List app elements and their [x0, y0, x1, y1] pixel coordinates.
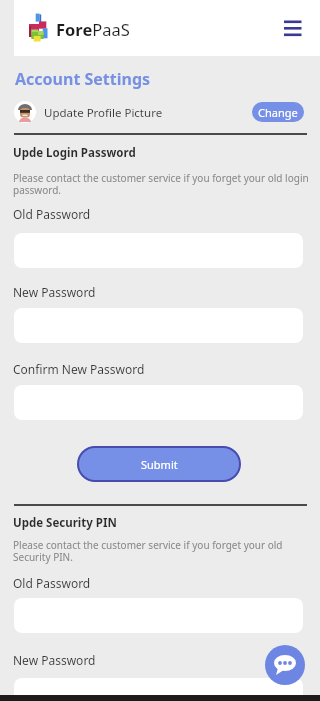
staticText: ForePaaS	[56, 18, 130, 40]
staticText: Please contact the customer service if y…	[13, 538, 283, 564]
button[interactable]: Change	[252, 102, 304, 122]
button[interactable]: Submit	[77, 446, 241, 482]
button[interactable]	[14, 678, 303, 701]
staticText: Upde Login Password	[13, 145, 136, 161]
button[interactable]	[265, 645, 305, 685]
button[interactable]	[278, 14, 306, 42]
staticText: Upde Security PIN	[13, 515, 117, 531]
staticText: Update Profile Picture	[44, 105, 163, 121]
staticText: Old Password	[13, 575, 91, 591]
staticText: Please contact the customer service if y…	[13, 171, 309, 197]
staticText: New Password	[13, 284, 96, 300]
staticText: Account Settings	[15, 68, 151, 90]
staticText: Old Password	[13, 206, 91, 222]
staticText: Change	[258, 105, 298, 120]
staticText: Submit	[141, 457, 178, 472]
staticText: New Password	[13, 652, 96, 668]
staticText: Confirm New Password	[13, 361, 145, 377]
